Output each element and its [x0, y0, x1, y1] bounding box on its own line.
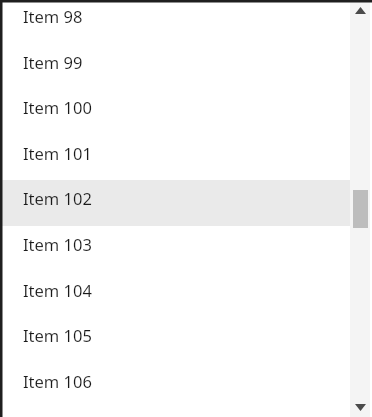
button[interactable]: Item 100 — [2, 94, 352, 120]
button[interactable]: Scroll up — [350, 0, 370, 20]
staticText: Item 103 — [23, 233, 92, 255]
staticText: Item 106 — [23, 370, 92, 392]
button[interactable]: Item 104 — [2, 277, 352, 303]
staticText: Item 100 — [23, 96, 92, 118]
button[interactable]: Item 101 — [2, 140, 352, 166]
staticText: Item 102 — [23, 187, 92, 209]
button[interactable]: Item 98 — [2, 3, 352, 29]
button[interactable]: Item 103 — [2, 231, 352, 257]
button[interactable]: Item 99 — [2, 49, 352, 75]
staticText: Item 104 — [23, 279, 92, 301]
staticText: Item 105 — [23, 324, 92, 346]
staticText: Item 101 — [23, 142, 92, 164]
button[interactable]: Item 105 — [2, 322, 352, 348]
button[interactable]: Item 102 — [2, 185, 352, 211]
staticText: Item 99 — [23, 51, 83, 73]
button[interactable]: Scroll down — [350, 397, 370, 417]
button[interactable]: Item 106 — [2, 368, 352, 394]
staticText: Item 98 — [23, 5, 83, 27]
